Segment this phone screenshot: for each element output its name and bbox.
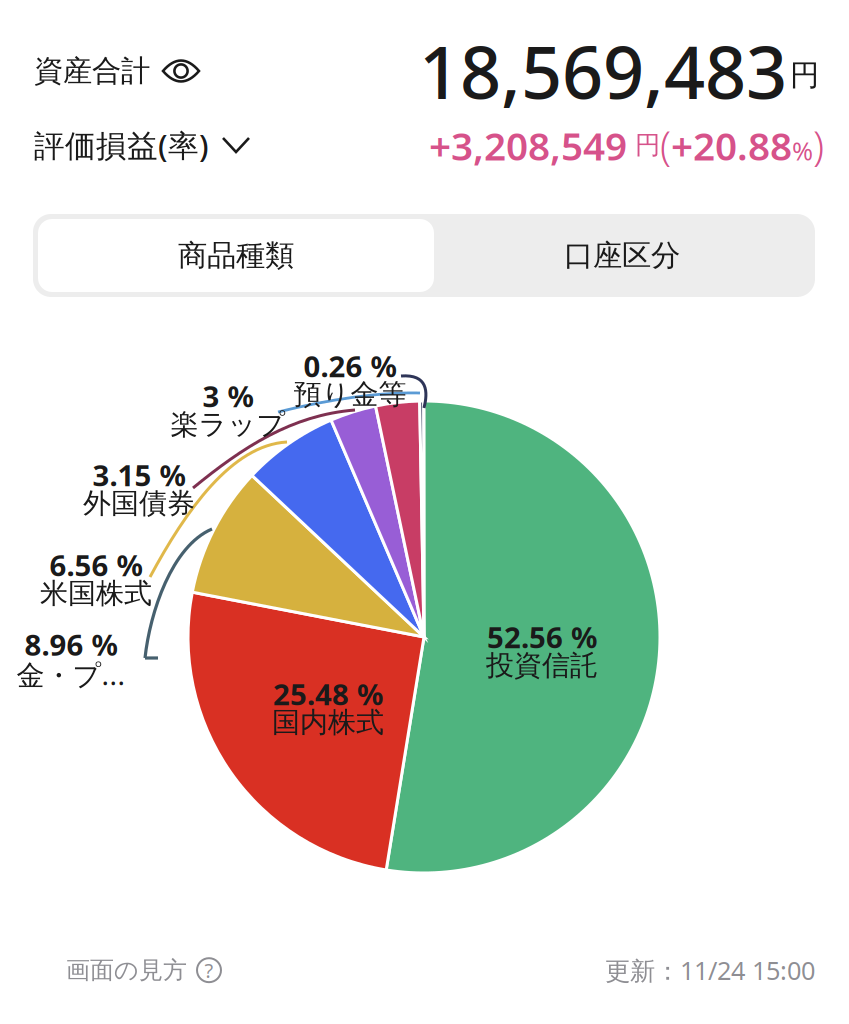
staticText: 6.56 %	[49, 545, 142, 584]
button[interactable]: 商品種類	[38, 219, 434, 292]
staticText: 円	[627, 129, 660, 161]
staticText: 0.26 %	[303, 346, 396, 385]
staticText: %	[792, 134, 813, 167]
staticText: 25.48 %	[273, 674, 383, 713]
staticText: 3 %	[202, 376, 253, 415]
staticText: 8.96 %	[24, 625, 117, 664]
staticText: 国内株式	[272, 705, 384, 740]
staticText: 米国株式	[40, 576, 152, 611]
staticText: 預り金等	[293, 377, 406, 412]
staticText: 円	[790, 57, 819, 93]
staticText: +3,208,549	[429, 120, 627, 171]
staticText: 口座区分	[564, 237, 680, 273]
staticText: 画面の見方	[66, 955, 187, 985]
staticText: )	[813, 118, 824, 171]
staticText: 商品種類	[178, 237, 294, 273]
button[interactable]: 資産合計	[34, 53, 199, 89]
staticText: 18,569,483	[419, 23, 787, 119]
staticText: 楽ラップ	[170, 407, 285, 442]
staticText: 更新：11/24 15:00	[605, 953, 815, 987]
staticText: +20.88	[671, 120, 792, 171]
staticText: ?	[204, 957, 213, 983]
button[interactable]: 画面の見方	[66, 955, 221, 985]
button[interactable]: 評価損益(率)	[34, 125, 249, 165]
staticText: 資産合計	[34, 53, 150, 89]
staticText: 投資信託	[486, 648, 598, 683]
staticText: 3.15 %	[92, 455, 185, 494]
staticText: 外国債券	[83, 486, 195, 521]
staticText: 評価損益(率)	[34, 125, 209, 165]
staticText: 52.56 %	[487, 617, 597, 656]
button[interactable]: 口座区分	[434, 219, 810, 292]
staticText: (	[660, 118, 671, 171]
staticText: 金・プ...	[16, 656, 125, 693]
